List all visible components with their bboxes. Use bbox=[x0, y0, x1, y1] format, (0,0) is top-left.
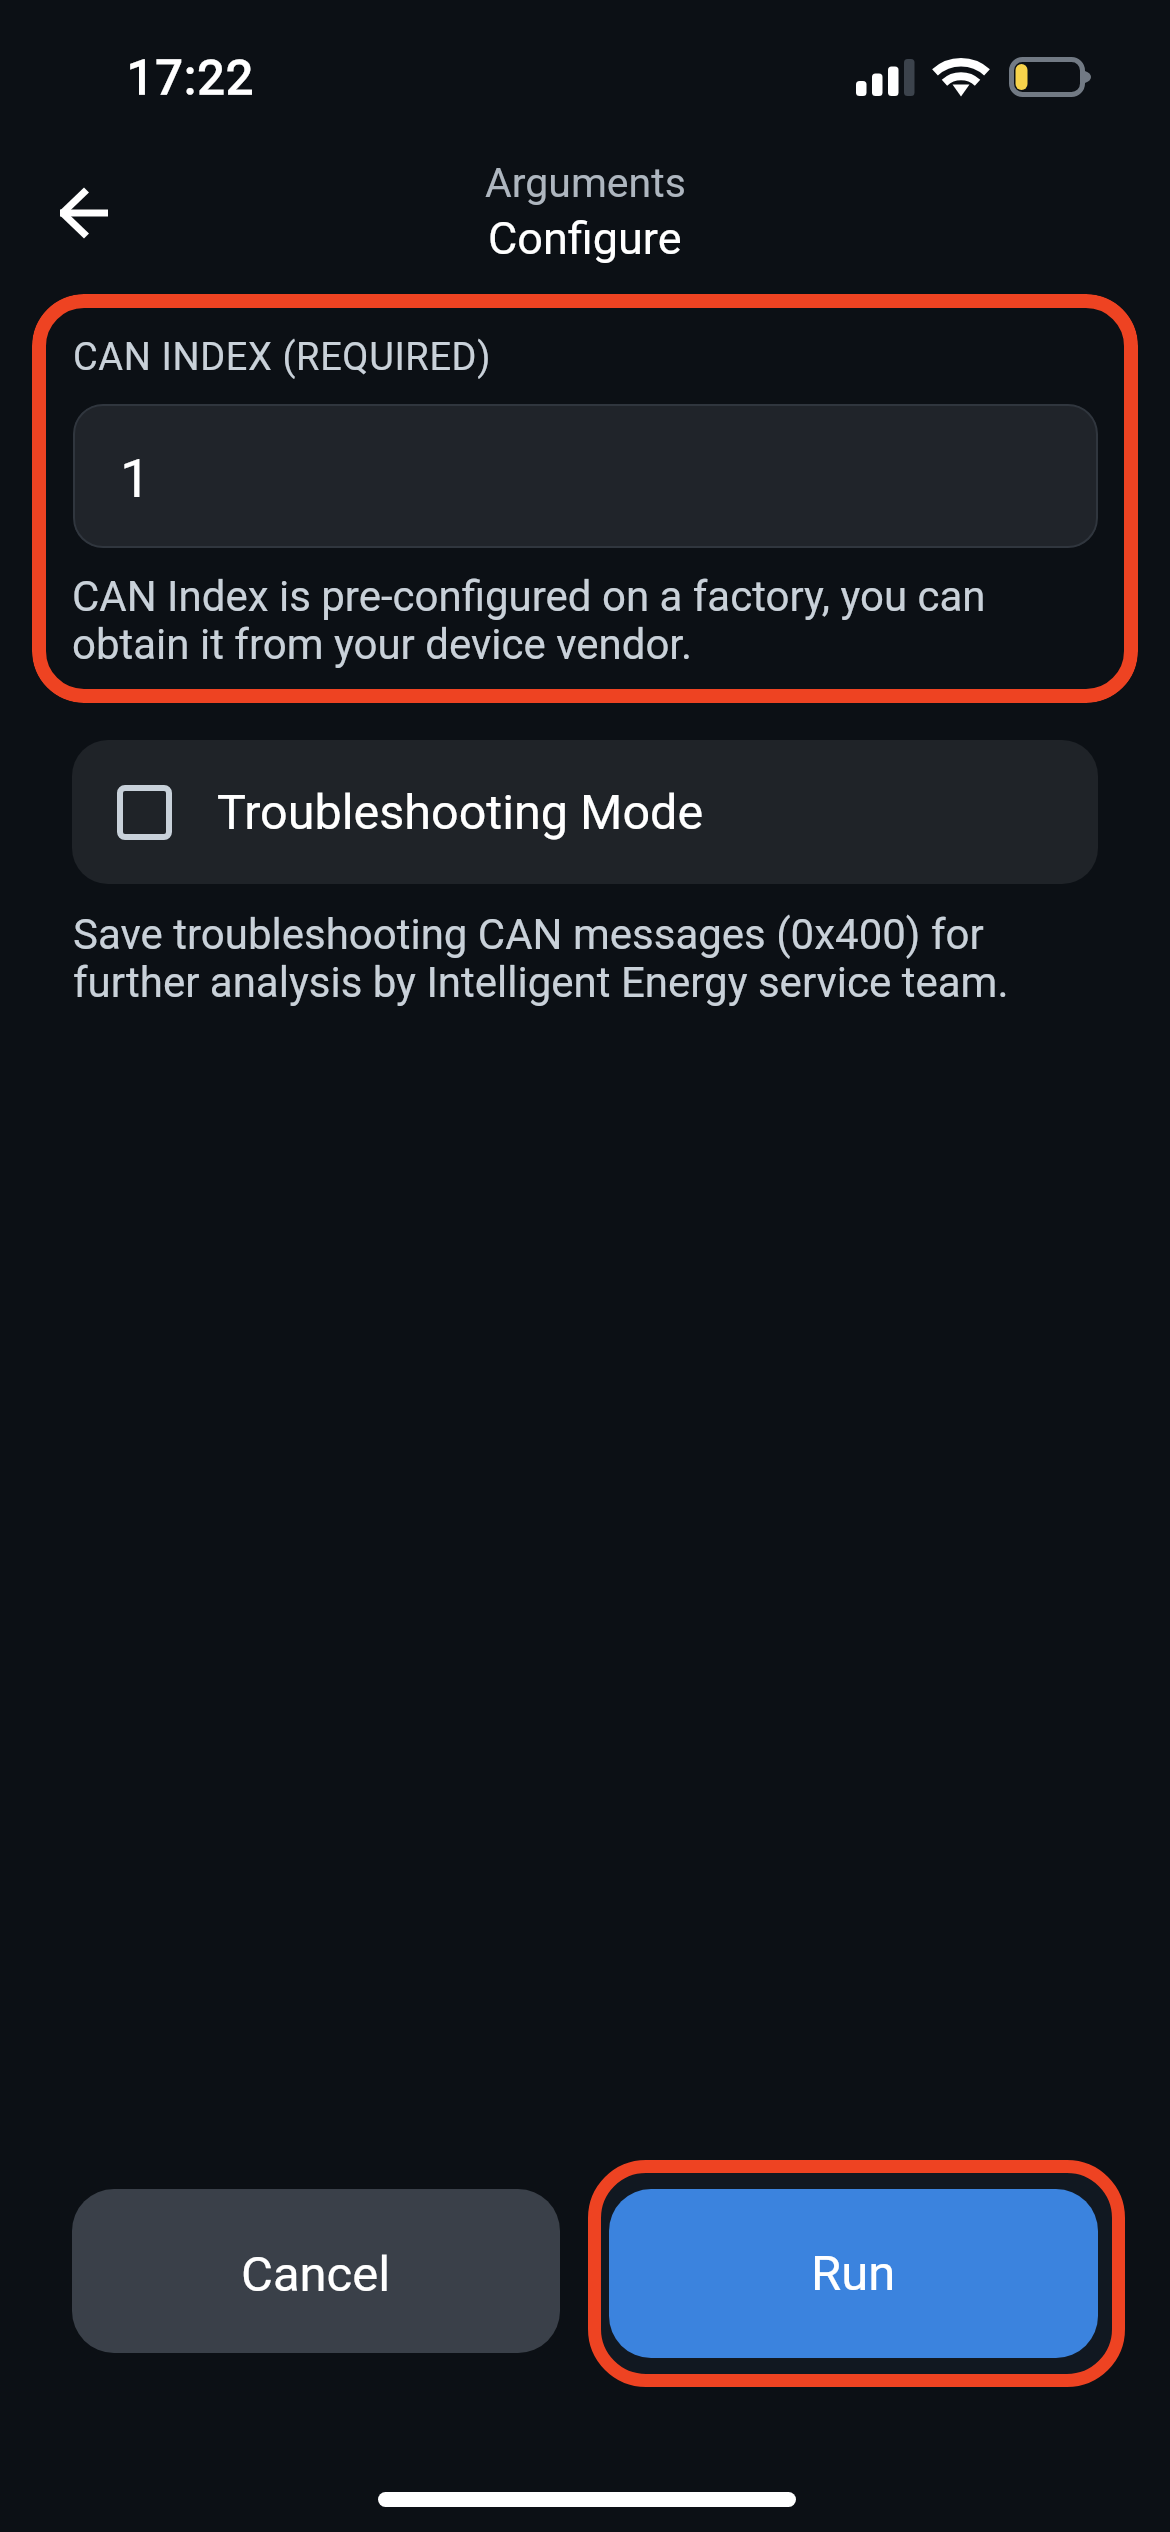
staticText: Configure bbox=[488, 212, 682, 265]
staticText: Cancel bbox=[241, 2246, 391, 2303]
button[interactable]: 1 bbox=[73, 404, 1098, 548]
staticText: Troubleshooting Mode bbox=[217, 784, 704, 841]
button[interactable]: Back bbox=[36, 165, 132, 261]
staticText: Run bbox=[811, 2245, 896, 2302]
staticText: 1 bbox=[120, 447, 151, 510]
button[interactable]: Troubleshooting Mode bbox=[72, 740, 1098, 884]
staticText: CAN INDEX (REQUIRED) bbox=[73, 335, 492, 380]
button[interactable]: Cancel bbox=[72, 2189, 560, 2353]
button[interactable]: Run bbox=[609, 2189, 1098, 2358]
staticText: CAN Index is pre-configured on a factory… bbox=[72, 572, 1022, 669]
staticText: Arguments bbox=[485, 159, 686, 207]
staticText: 17:22 bbox=[127, 49, 255, 105]
staticText: Save troubleshooting CAN messages (0x400… bbox=[73, 910, 1023, 1007]
